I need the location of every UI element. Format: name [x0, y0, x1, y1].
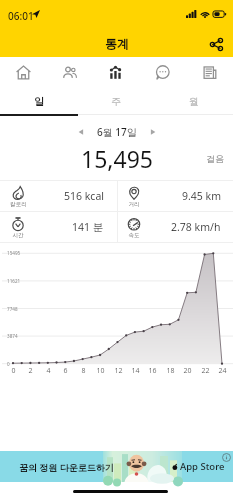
button[interactable]: 꿈의 정원 다운로드하기 [0, 451, 233, 482]
button[interactable]: Ad info [222, 453, 231, 462]
staticText: 15,495 [81, 143, 153, 173]
staticText: 18 [166, 366, 175, 376]
button[interactable]: Friends [46, 57, 92, 88]
button[interactable]: 월 [155, 88, 233, 115]
staticText: 15495 [7, 250, 21, 256]
button[interactable]: Next day [143, 122, 163, 142]
button[interactable]: 칼로리 [0, 180, 116, 211]
button[interactable]: Share [205, 33, 227, 55]
staticText: 8 [81, 366, 86, 376]
staticText: 7748 [7, 306, 18, 312]
staticText: 일 [34, 95, 44, 108]
button[interactable]: 속도 [116, 211, 233, 243]
button[interactable]: News [186, 57, 233, 88]
staticText: 11621 [7, 278, 21, 284]
staticText: 20 [183, 366, 192, 376]
button[interactable]: 일 [0, 88, 77, 115]
staticText: 6 [63, 366, 68, 376]
staticText: 걸음 [206, 153, 224, 164]
staticText: 6월 17일 [97, 125, 137, 139]
button[interactable]: Previous day [71, 122, 91, 142]
staticText: 14 [131, 366, 140, 376]
staticText: 16 [148, 366, 157, 376]
staticText: 월 [189, 95, 199, 108]
staticText: 2 [28, 366, 33, 376]
staticText: 24 [218, 366, 227, 376]
staticText: 시간 [12, 232, 24, 239]
staticText: 3874 [7, 333, 18, 339]
button[interactable]: Home [0, 57, 46, 88]
staticText: 0 [11, 366, 16, 376]
staticText: 141 분 [72, 220, 104, 234]
staticText: 516 kcal [64, 189, 104, 203]
staticText: 22 [201, 366, 210, 376]
staticText: App Store [180, 460, 225, 473]
button[interactable]: 주 [77, 88, 155, 115]
staticText: 0 [7, 361, 10, 367]
staticText: 칼로리 [10, 201, 27, 208]
staticText: 주 [111, 95, 121, 108]
staticText: 12 [114, 366, 123, 376]
staticText: 06:01 [8, 9, 34, 23]
staticText: 4 [46, 366, 51, 376]
staticText: 꿈의 정원 다운로드하기 [19, 461, 114, 473]
staticText: 10 [96, 366, 105, 376]
button[interactable]: Chat [139, 57, 186, 88]
staticText: 속도 [128, 232, 140, 239]
button[interactable]: 시간 [0, 211, 116, 243]
staticText: 9.45 km [182, 189, 221, 203]
button[interactable]: 거리 [116, 180, 233, 211]
staticText: 2.78 km/h [171, 220, 221, 234]
staticText: 거리 [128, 201, 140, 208]
button[interactable]: Statistics [92, 57, 139, 88]
staticText: 통계 [105, 36, 129, 51]
